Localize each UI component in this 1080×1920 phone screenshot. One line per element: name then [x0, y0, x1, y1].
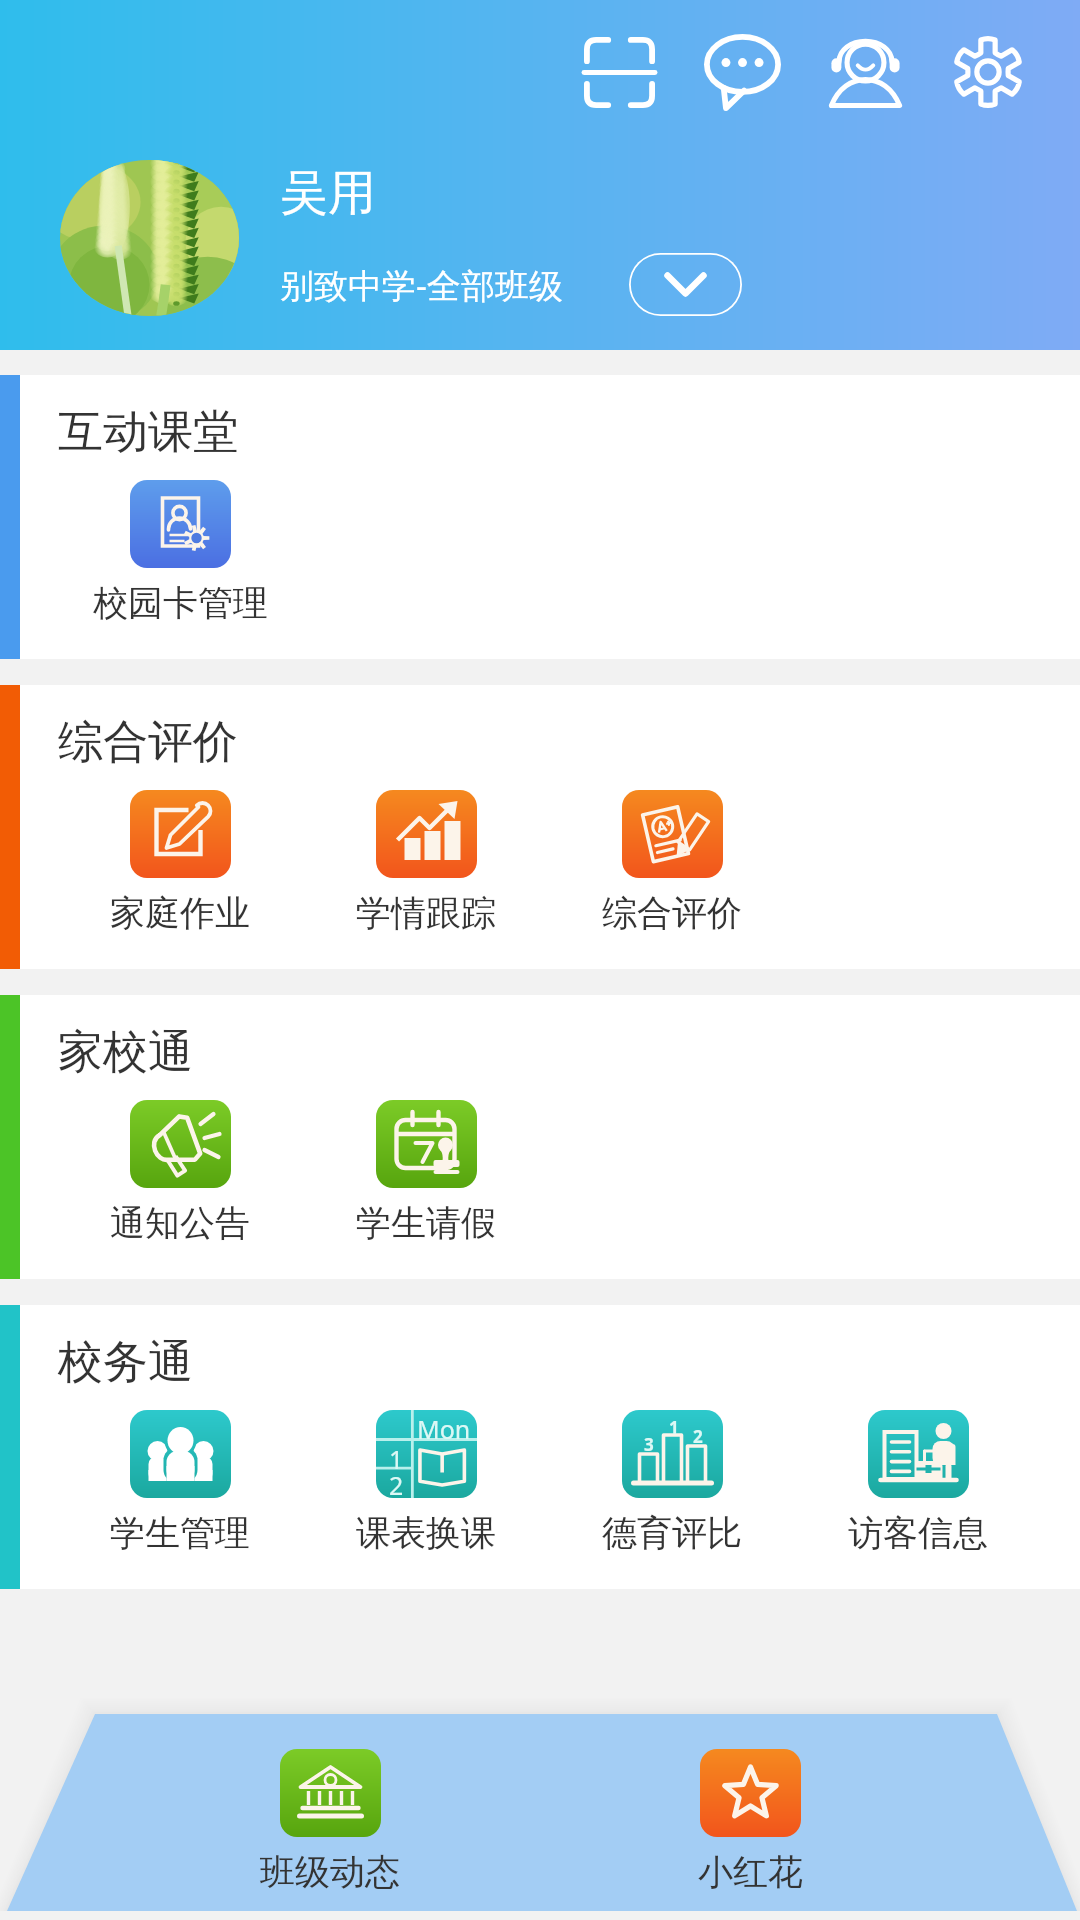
staticText: 学生请假 [356, 1201, 496, 1245]
button[interactable]: Customer service [811, 18, 919, 126]
staticText: 德育评比 [602, 1511, 742, 1555]
staticText: 访客信息 [848, 1511, 988, 1555]
staticText: 别致中学-全部班级 [280, 262, 563, 308]
button[interactable]: Profile photo [60, 160, 239, 316]
staticText: 综合评价 [602, 891, 742, 935]
button[interactable]: 小红花 [640, 1749, 860, 1894]
staticText: 吴用 [280, 163, 376, 223]
staticText: 学情跟踪 [356, 891, 496, 935]
button[interactable]: 家庭作业 [110, 790, 250, 935]
button[interactable]: 学生管理 [110, 1410, 250, 1555]
staticText: 综合评价 [58, 714, 238, 771]
staticText: 2 [389, 1468, 404, 1498]
button[interactable]: 通知公告 [110, 1100, 250, 1245]
staticText: 小红花 [698, 1850, 803, 1894]
staticText: 家校通 [58, 1024, 193, 1081]
button[interactable]: 学情跟踪 [356, 790, 496, 935]
staticText: 学生管理 [110, 1511, 250, 1555]
staticText: 1 [669, 1416, 679, 1439]
button[interactable]: Switch class [629, 253, 742, 316]
button[interactable]: Messages [688, 18, 796, 126]
button[interactable]: 3 [602, 1410, 742, 1555]
staticText: 1 [389, 1442, 404, 1476]
staticText: 互动课堂 [58, 404, 238, 461]
staticText: 2 [693, 1425, 703, 1448]
staticText: 校园卡管理 [93, 581, 268, 625]
button[interactable]: 访客信息 [848, 1410, 988, 1555]
staticText: 家庭作业 [110, 891, 250, 935]
button[interactable]: Scan [565, 18, 673, 126]
staticText: 课表换课 [356, 1511, 496, 1555]
button[interactable]: Settings [934, 18, 1042, 126]
button[interactable]: 综合评价 [602, 790, 742, 935]
button[interactable]: 校园卡管理 [93, 480, 268, 625]
staticText: 校务通 [58, 1334, 193, 1391]
staticText: 3 [644, 1433, 654, 1456]
button[interactable]: 学生请假 [356, 1100, 496, 1245]
staticText: 班级动态 [260, 1850, 400, 1894]
staticText: 通知公告 [110, 1201, 250, 1245]
staticText: Mon [417, 1412, 471, 1446]
button[interactable]: Mon [356, 1410, 496, 1555]
button[interactable]: 班级动态 [220, 1749, 440, 1894]
